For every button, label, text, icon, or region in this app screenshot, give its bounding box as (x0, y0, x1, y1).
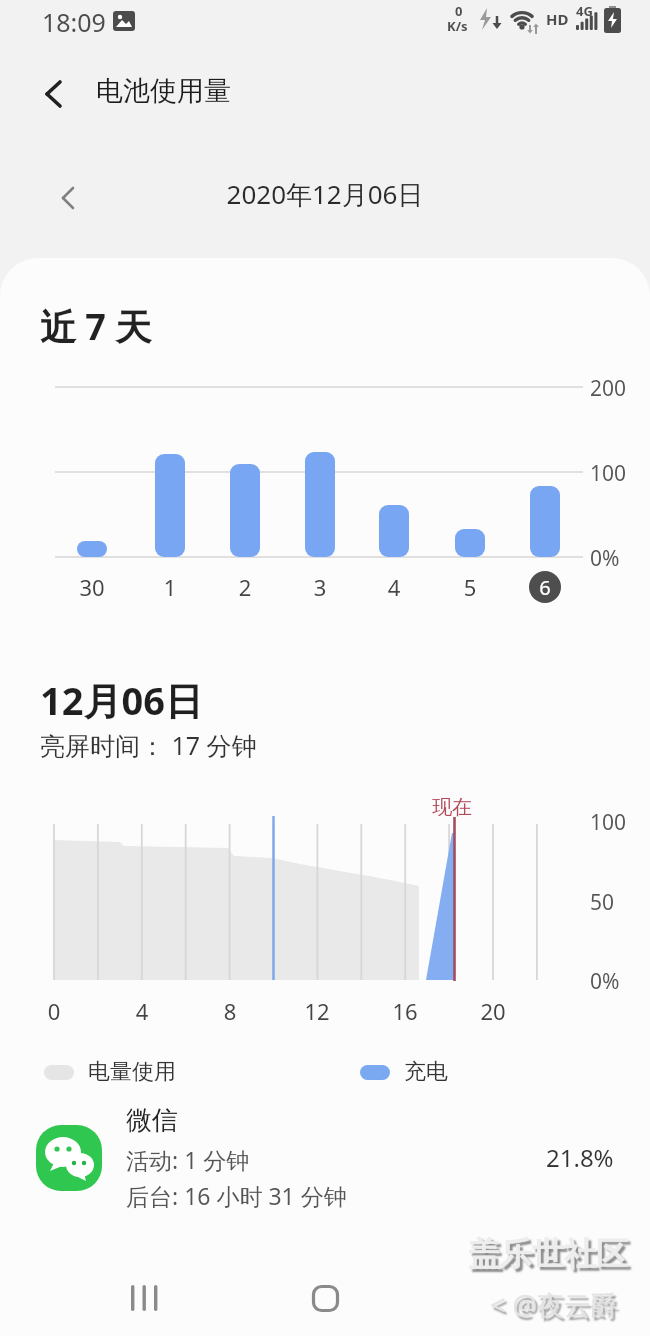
staticText: 4 (364, 572, 424, 602)
staticText: 近 7 天 (40, 302, 152, 351)
staticText: 100 (590, 459, 627, 488)
button[interactable] (118, 1272, 170, 1324)
staticText: 0 (455, 2, 463, 20)
staticText: 30 (62, 572, 122, 602)
staticText: 4 (112, 996, 172, 1026)
staticText: 5 (440, 572, 500, 602)
staticText: 活动: 1 分钟 (126, 1144, 250, 1175)
staticText: < @夜云爵 (490, 1286, 618, 1323)
staticText: 电量使用 (88, 1058, 176, 1086)
staticText: 200 (590, 374, 627, 403)
staticText: 0% (590, 544, 620, 573)
staticText: 微信 (126, 1104, 178, 1137)
staticText: 20 (463, 996, 523, 1026)
button[interactable]: 2020年12月06日 (0, 176, 650, 212)
staticText: 后台: 16 小时 31 分钟 (126, 1180, 347, 1211)
staticText: 1 (140, 572, 200, 602)
staticText: 充电 (404, 1058, 448, 1086)
staticText: 0 (24, 996, 84, 1026)
button[interactable] (480, 1272, 532, 1324)
staticText: 21.8% (546, 1141, 614, 1174)
staticText: 0% (590, 967, 620, 996)
staticText: 3 (290, 572, 350, 602)
button[interactable]: 微信 (0, 1104, 650, 1211)
staticText: 18:09 (42, 5, 106, 39)
staticText: 4G (576, 2, 593, 20)
staticText: 亮屏时间： 17 分钟 (40, 728, 257, 762)
staticText: HD (546, 9, 569, 29)
button[interactable] (299, 1272, 351, 1324)
staticText: 100 (590, 808, 627, 837)
staticText: K/s (447, 17, 468, 35)
staticText: 电池使用量 (96, 74, 231, 108)
staticText: 盖乐世社区 (468, 1234, 628, 1274)
staticText: 现在 (432, 795, 472, 820)
staticText: 8 (200, 996, 260, 1026)
button[interactable] (30, 70, 78, 118)
staticText: 12 (287, 996, 347, 1026)
staticText: 50 (590, 888, 615, 917)
staticText: 16 (375, 996, 435, 1026)
staticText: 2 (215, 572, 275, 602)
button[interactable] (48, 178, 88, 218)
staticText: 12月06日 (40, 674, 203, 726)
staticText: 6 (515, 574, 575, 601)
